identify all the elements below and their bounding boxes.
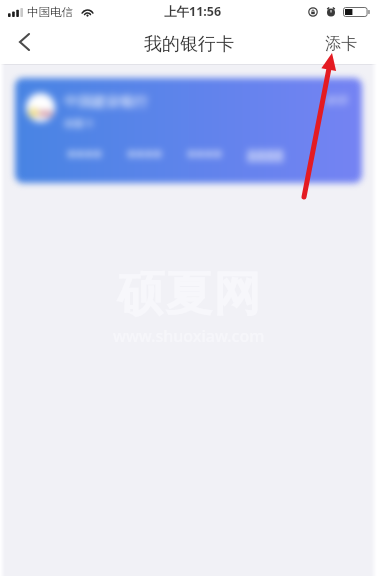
button[interactable]: 返回 <box>6 24 42 60</box>
staticText: 我的银行卡 <box>144 33 234 56</box>
button[interactable]: 添卡 <box>323 29 359 59</box>
staticText: 中国电信 <box>27 5 73 19</box>
button[interactable]: 中国建设银行 <box>15 78 362 183</box>
staticText: 中国建设银行 <box>64 93 148 111</box>
staticText: 解绑 <box>326 93 348 107</box>
staticText: 储蓄卡 <box>64 117 94 130</box>
staticText: 添卡 <box>325 34 357 54</box>
staticText: 上午11:56 <box>164 3 222 20</box>
staticText: **** **** **** 8888 <box>67 145 284 167</box>
